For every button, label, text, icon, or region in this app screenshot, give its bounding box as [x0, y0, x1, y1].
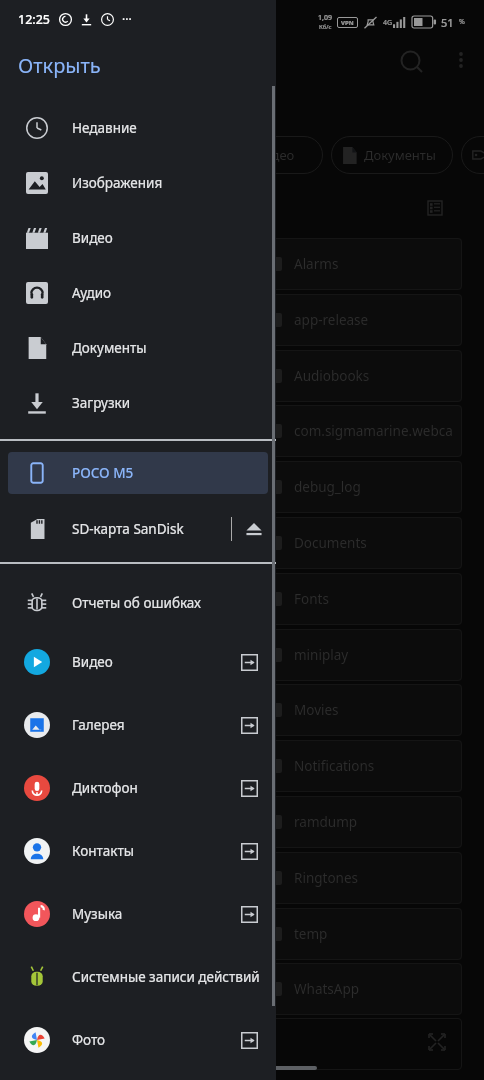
button[interactable]: Eject SD card — [232, 507, 276, 551]
staticText: 1,09 — [318, 13, 332, 23]
staticText: Недавние — [72, 119, 137, 137]
staticText: % — [459, 17, 465, 27]
button[interactable]: Недавние — [0, 100, 276, 155]
staticText: Контакты — [72, 842, 134, 860]
staticText: Аудио — [72, 284, 112, 302]
button[interactable]: ramdump — [262, 796, 462, 848]
staticText: Notifications — [294, 757, 375, 775]
button[interactable]: Отчеты об ошибках — [0, 575, 276, 630]
staticText: Документы — [364, 146, 436, 164]
staticText: Диктофон — [72, 779, 138, 797]
button[interactable]: Search — [395, 45, 429, 79]
button[interactable]: Open in app — [232, 897, 266, 931]
staticText: ramdump — [294, 813, 358, 831]
button[interactable]: Галерея — [0, 693, 276, 756]
staticText: VPN — [341, 19, 354, 27]
staticText: debug_log — [294, 478, 361, 496]
staticText: Movies — [294, 701, 339, 719]
staticText: Отчеты об ошибках — [72, 594, 201, 612]
staticText: Изображения — [72, 174, 163, 192]
button[interactable]: debug_log — [262, 461, 462, 513]
button[interactable]: com.sigmamarine.webcams — [262, 405, 462, 457]
staticText: miniplay — [294, 646, 349, 664]
button[interactable]: Expand — [423, 1028, 451, 1056]
button[interactable]: WhatsApp — [262, 963, 462, 1015]
staticText: Видео — [72, 229, 113, 247]
button[interactable]: Fonts — [262, 573, 462, 625]
button[interactable]: Alarms — [262, 238, 462, 290]
button[interactable]: Изображения — [0, 155, 276, 210]
staticText: Документы — [72, 339, 147, 357]
staticText: temp — [294, 925, 328, 943]
button[interactable]: Документы — [0, 320, 276, 375]
button[interactable]: Аудио — [0, 265, 276, 320]
button[interactable]: Видео — [0, 210, 276, 265]
button[interactable]: Диктофон — [0, 756, 276, 819]
staticText: Видео — [255, 146, 295, 164]
staticText: 12:25 — [18, 11, 51, 28]
button[interactable]: Open in app — [232, 771, 266, 805]
staticText: Documents — [294, 534, 367, 552]
staticText: Видео — [72, 653, 113, 671]
button[interactable] — [262, 1018, 462, 1070]
staticText: Системные записи действий — [72, 968, 260, 986]
button[interactable]: List view — [421, 194, 449, 222]
button[interactable]: temp — [262, 908, 462, 960]
button[interactable]: More options — [446, 45, 476, 75]
staticText: ··· — [122, 11, 132, 27]
button[interactable] — [461, 136, 484, 174]
button[interactable]: Open in app — [232, 645, 266, 679]
staticText: com.sigmamarine.webcams — [294, 422, 462, 440]
staticText: app-release — [294, 311, 369, 329]
staticText: Фото — [72, 1031, 106, 1049]
staticText: Кб/с — [319, 23, 332, 31]
button[interactable]: Загрузки — [0, 375, 276, 430]
staticText: WhatsApp — [294, 980, 360, 998]
button[interactable]: Контакты — [0, 819, 276, 882]
button[interactable]: Movies — [262, 684, 462, 736]
button[interactable]: Documents — [262, 517, 462, 569]
staticText: SD-карта SanDisk — [72, 520, 184, 538]
button[interactable]: Ringtones — [262, 852, 462, 904]
staticText: Fonts — [294, 590, 329, 608]
staticText: Галерея — [72, 716, 125, 734]
button[interactable]: Документы — [331, 136, 453, 174]
button[interactable]: Open in app — [232, 708, 266, 742]
button[interactable]: POCO M5 — [8, 452, 268, 494]
staticText: Открыть — [18, 52, 101, 79]
button[interactable]: Open in app — [232, 834, 266, 868]
button[interactable]: Open in app — [232, 1023, 266, 1057]
staticText: Загрузки — [72, 394, 131, 412]
button[interactable]: Видео — [245, 136, 323, 174]
staticText: Audiobooks — [294, 367, 370, 385]
button[interactable]: SD-карта SanDisk — [0, 507, 276, 551]
button[interactable]: Фото — [0, 1008, 276, 1071]
staticText: 51 — [441, 15, 454, 30]
staticText: POCO M5 — [72, 464, 134, 482]
staticText: Музыка — [72, 905, 123, 923]
button[interactable]: Audiobooks — [262, 350, 462, 402]
button[interactable]: Видео — [0, 630, 276, 693]
staticText: Ringtones — [294, 869, 358, 887]
staticText: Alarms — [294, 255, 339, 273]
button[interactable]: app-release — [262, 294, 462, 346]
button[interactable]: Системные записи действий — [0, 945, 276, 1008]
button[interactable]: Музыка — [0, 882, 276, 945]
button[interactable]: miniplay — [262, 629, 462, 681]
staticText: 4G — [383, 18, 393, 28]
button[interactable]: Notifications — [262, 740, 462, 792]
